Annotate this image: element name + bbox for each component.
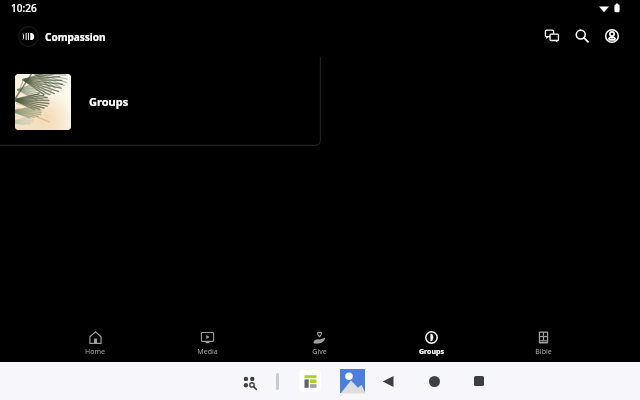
staticText: Groups: [89, 94, 129, 109]
button[interactable]: All apps: [239, 372, 261, 394]
button[interactable]: Media: [151, 324, 263, 362]
staticText: Give: [312, 347, 327, 357]
button[interactable]: Home: [39, 324, 151, 362]
staticText: Groups: [419, 347, 444, 357]
staticText: Compassion: [45, 30, 106, 44]
staticText: Media: [197, 347, 218, 357]
button[interactable]: Back: [378, 371, 398, 391]
button[interactable]: Recents: [469, 371, 489, 391]
button[interactable]: Groups: [375, 324, 487, 362]
staticText: Home: [85, 347, 105, 357]
button[interactable]: Bible: [487, 324, 599, 362]
button[interactable]: Search: [570, 24, 594, 48]
button[interactable]: Groups: [0, 57, 321, 146]
button[interactable]: Photos: [340, 369, 366, 394]
button[interactable]: Home: [424, 371, 444, 391]
button[interactable]: Account: [600, 24, 624, 48]
button[interactable]: Give: [263, 324, 375, 362]
staticText: 10:26: [11, 1, 37, 15]
staticText: Bible: [535, 347, 552, 357]
button[interactable]: Messages: [540, 24, 564, 48]
button[interactable]: App shortcut: [299, 370, 321, 392]
